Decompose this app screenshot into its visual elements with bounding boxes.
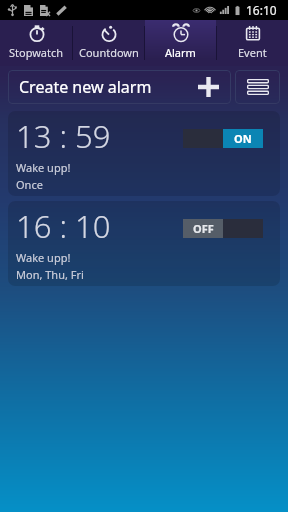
button[interactable]: Event: [217, 20, 288, 66]
staticText: Alarm: [165, 45, 196, 60]
staticText: 16:10: [246, 2, 277, 18]
staticText: Wake upp!: [16, 250, 71, 265]
staticText: 13 : 59: [16, 115, 111, 157]
button[interactable]: Create new alarm: [8, 70, 231, 104]
button[interactable]: Stopwatch: [0, 20, 72, 66]
button[interactable]: Alarm off: [183, 219, 263, 238]
button[interactable]: 13 : 59: [8, 111, 280, 196]
button[interactable]: Alarm on: [183, 129, 263, 148]
staticText: Stopwatch: [9, 45, 64, 60]
button[interactable]: List view: [235, 70, 280, 104]
staticText: OFF: [193, 221, 214, 236]
staticText: 16 : 10: [16, 205, 111, 247]
staticText: Event: [238, 45, 267, 60]
staticText: Create new alarm: [19, 76, 198, 98]
button[interactable]: Countdown: [73, 20, 144, 66]
staticText: Mon, Thu, Fri: [16, 267, 84, 282]
staticText: Wake upp!: [16, 160, 71, 175]
staticText: Once: [16, 177, 43, 192]
staticText: Countdown: [79, 45, 139, 60]
staticText: ON: [234, 131, 252, 146]
button[interactable]: 16 : 10: [8, 201, 280, 286]
button[interactable]: Alarm: [145, 20, 216, 66]
